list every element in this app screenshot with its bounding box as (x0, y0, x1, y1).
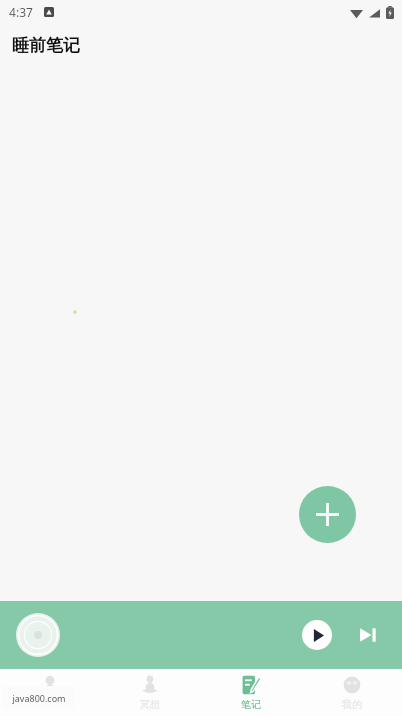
staticText: 睡前笔记 (12, 35, 80, 56)
button[interactable]: Add note (299, 486, 356, 543)
button[interactable]: 助眠 (0, 669, 100, 716)
staticText: 我的 (342, 698, 362, 711)
button[interactable]: Next track (354, 621, 382, 649)
button[interactable]: Now playing cover (0, 601, 402, 669)
staticText: java800.com (12, 692, 66, 704)
staticText: 助眠 (40, 698, 60, 711)
button[interactable]: Play (302, 620, 332, 650)
staticText: 冥想 (140, 698, 160, 711)
button[interactable]: 我的 (301, 669, 402, 716)
button[interactable]: 冥想 (100, 669, 200, 716)
other: Now playing cover (16, 613, 60, 657)
staticText: 4:37 (9, 4, 33, 20)
button[interactable]: 笔记 (200, 669, 301, 716)
staticText: 笔记 (241, 698, 261, 711)
